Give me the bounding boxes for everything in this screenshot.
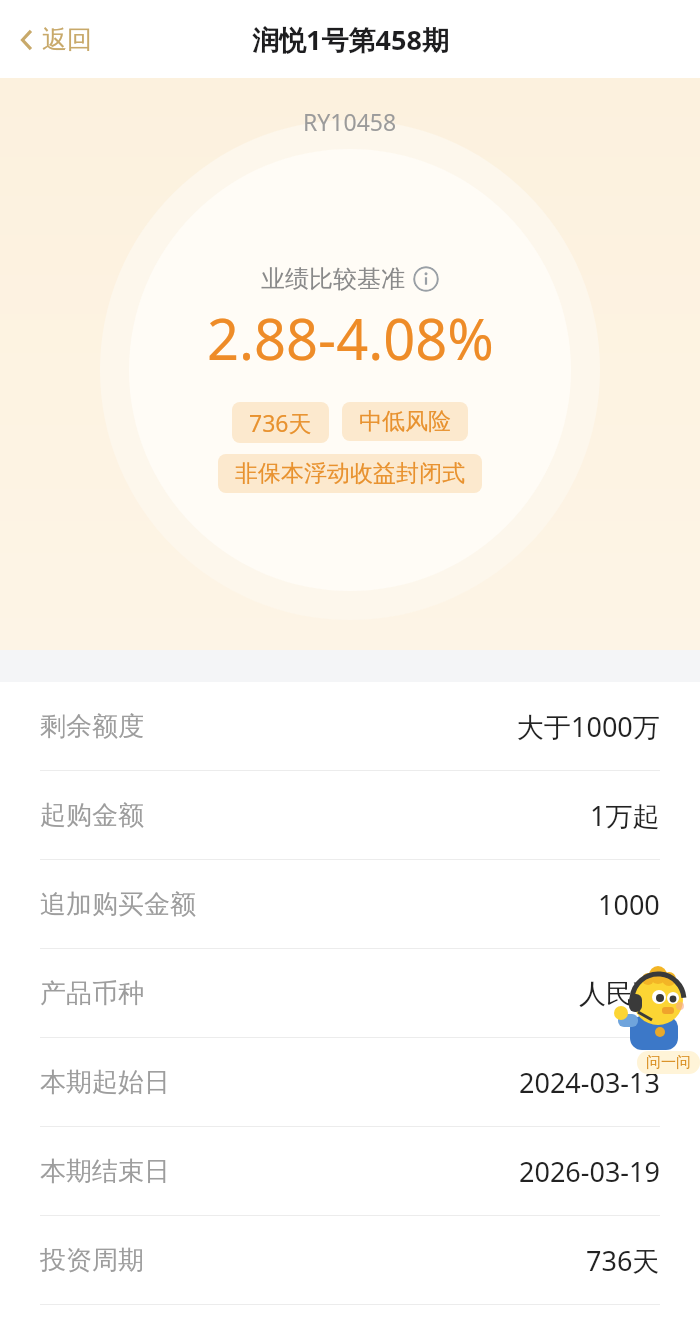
button[interactable]: 起购金额 bbox=[0, 771, 700, 860]
staticText: 非保本浮动收益封闭式 bbox=[235, 459, 465, 488]
staticText: 736天 bbox=[586, 1242, 660, 1279]
staticText: 业绩比较基准 bbox=[261, 264, 405, 294]
staticText: 人民币 bbox=[579, 977, 660, 1011]
button[interactable]: 剩余额度 bbox=[0, 682, 700, 771]
staticText: 润悦1号第458期 bbox=[252, 21, 449, 58]
staticText: 1万起 bbox=[590, 797, 660, 834]
staticText: 本期起始日 bbox=[40, 1066, 170, 1099]
staticText: 返回 bbox=[42, 24, 92, 55]
staticText: 2024-03-13 bbox=[519, 1064, 660, 1101]
staticText: RY10458 bbox=[303, 106, 397, 137]
button[interactable]: 本期结束日 bbox=[0, 1127, 700, 1216]
button[interactable]: 在线客服 问一问 bbox=[612, 962, 698, 1074]
button[interactable]: 736天 bbox=[232, 402, 329, 443]
button[interactable]: 非保本浮动收益封闭式 bbox=[218, 454, 482, 493]
staticText: 2026-03-19 bbox=[519, 1153, 660, 1190]
staticText: 追加购买金额 bbox=[40, 888, 196, 921]
staticText: 问一问 bbox=[646, 1053, 691, 1072]
button[interactable]: 中低风险 bbox=[342, 402, 468, 441]
staticText: 大于1000万 bbox=[517, 708, 660, 745]
button[interactable]: 业绩比较基准说明 bbox=[413, 266, 439, 292]
staticText: 736天 bbox=[249, 407, 312, 438]
staticText: 本期结束日 bbox=[40, 1155, 170, 1188]
staticText: 产品币种 bbox=[40, 977, 144, 1010]
staticText: 剩余额度 bbox=[40, 710, 144, 743]
button[interactable]: 本期起始日 bbox=[0, 1038, 700, 1127]
button[interactable]: 投资周期 bbox=[0, 1216, 700, 1305]
button[interactable]: 产品币种 bbox=[0, 949, 700, 1038]
button[interactable]: 追加购买金额 bbox=[0, 860, 700, 949]
staticText: 投资周期 bbox=[40, 1244, 144, 1277]
button[interactable]: 返回 bbox=[14, 18, 98, 61]
staticText: 起购金额 bbox=[40, 799, 144, 832]
staticText: 中低风险 bbox=[359, 407, 451, 436]
staticText: 2.88-4.08% bbox=[207, 300, 494, 376]
staticText: 1000 bbox=[598, 886, 660, 923]
